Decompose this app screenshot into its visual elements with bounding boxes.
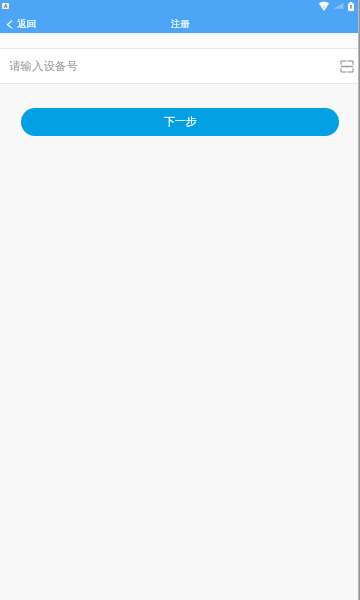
button[interactable]: 请输入设备号 [9,49,337,83]
staticText: 返回 [17,18,36,30]
staticText: 注册 [171,18,190,30]
staticText: 下一步 [164,114,197,128]
button[interactable]: Scan device QR code [337,56,357,76]
button[interactable]: 返回 [0,17,42,31]
button[interactable]: 下一步 [21,108,339,136]
staticText: 请输入设备号 [9,59,78,73]
staticText: A [4,3,8,9]
